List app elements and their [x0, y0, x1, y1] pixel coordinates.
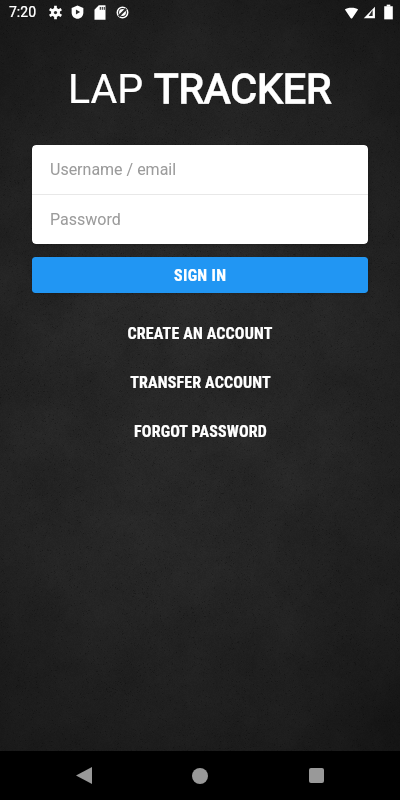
staticText: Username / email [50, 160, 177, 179]
button[interactable]: Back [52, 751, 116, 800]
button[interactable]: Recent apps [284, 751, 348, 800]
staticText: Password [50, 210, 121, 229]
button[interactable]: TRANSFER ACCOUNT [0, 358, 400, 407]
staticText: LAP [68, 65, 154, 113]
staticText: SIGN IN [174, 266, 227, 285]
button[interactable]: Home [168, 751, 232, 800]
staticText: FORGOT PASSWORD [134, 422, 267, 441]
staticText: 7:20 [9, 4, 36, 20]
button[interactable]: Username / email [32, 145, 368, 194]
staticText: CREATE AN ACCOUNT [127, 324, 273, 343]
staticText: TRACKER [154, 65, 332, 113]
staticText: TRANSFER ACCOUNT [130, 373, 271, 392]
button[interactable]: CREATE AN ACCOUNT [0, 309, 400, 358]
button[interactable]: SIGN IN [32, 257, 368, 293]
button[interactable]: Password [32, 195, 368, 244]
button[interactable]: FORGOT PASSWORD [0, 407, 400, 456]
